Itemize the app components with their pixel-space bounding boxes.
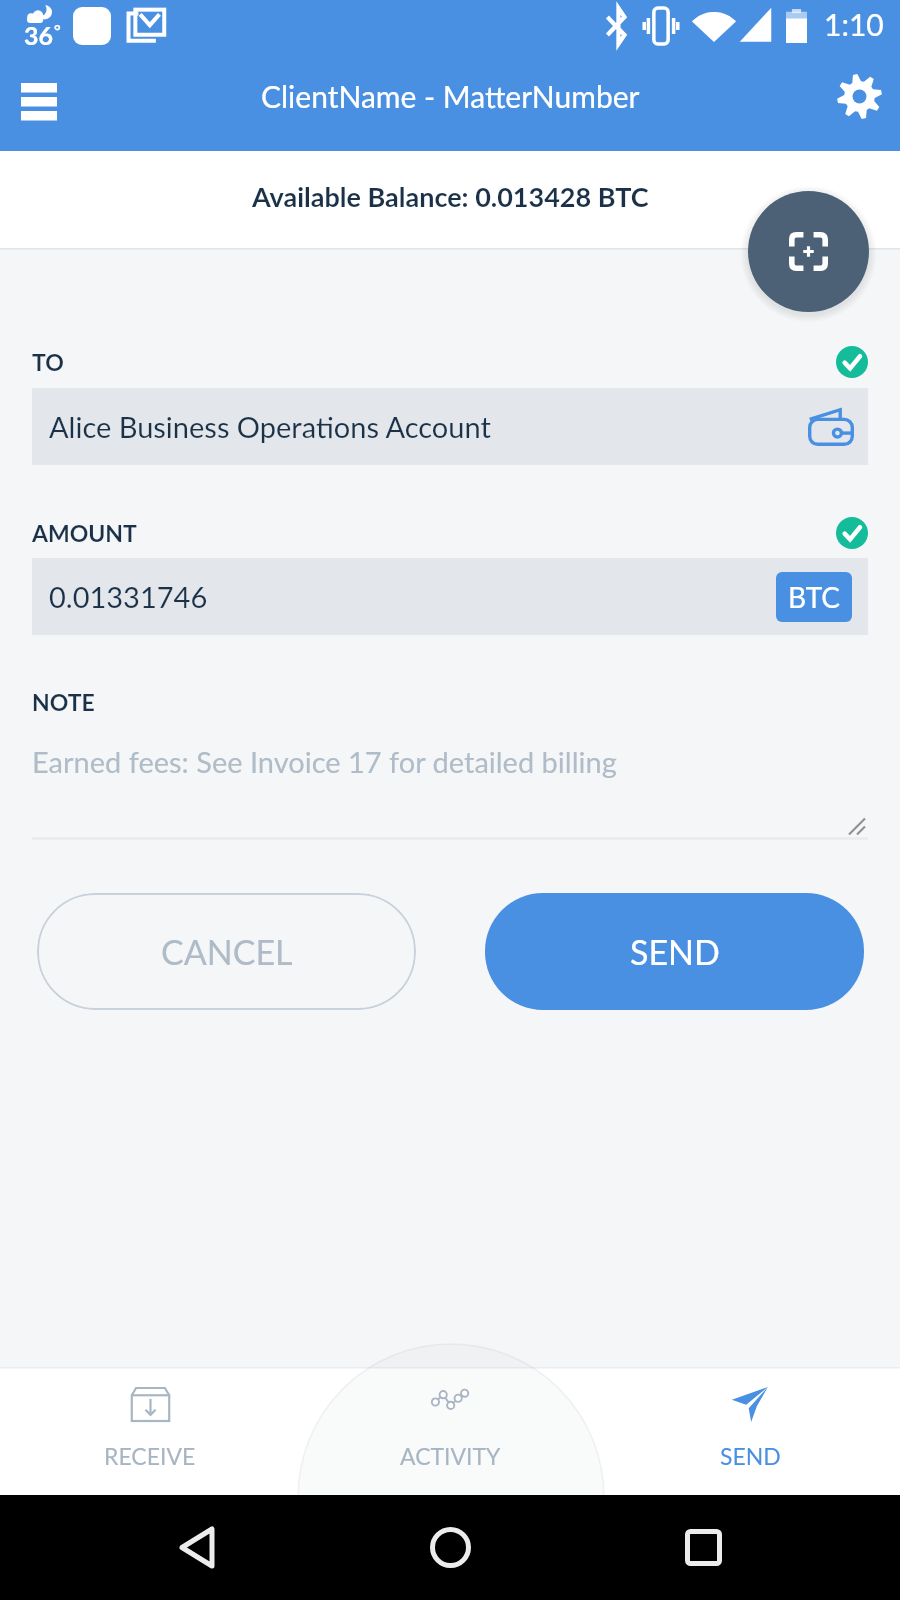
button[interactable]: Settings bbox=[826, 63, 892, 129]
staticText: Alice Business Operations Account bbox=[49, 409, 491, 444]
staticText: CANCEL bbox=[161, 931, 293, 972]
staticText: 0.01331746 bbox=[49, 579, 208, 614]
button[interactable]: BTC bbox=[776, 572, 852, 622]
button[interactable]: Earned fees: See Invoice 17 for detailed… bbox=[32, 735, 868, 839]
staticText: ° bbox=[54, 20, 61, 39]
button[interactable]: Back bbox=[167, 1517, 227, 1577]
button[interactable]: Scan QR code bbox=[748, 191, 869, 312]
staticText: 1:10 bbox=[824, 6, 884, 42]
button[interactable]: ACTIVITY bbox=[300, 1368, 600, 1495]
staticText: ACTIVITY bbox=[400, 1442, 501, 1470]
button[interactable]: Menu bbox=[5, 67, 73, 135]
button[interactable]: RECEIVE bbox=[0, 1368, 300, 1495]
staticText: 36 bbox=[24, 20, 54, 50]
button[interactable]: Alice Business Operations Account bbox=[32, 388, 868, 465]
staticText: ClientName - MatterNumber bbox=[261, 78, 640, 114]
staticText: SEND bbox=[720, 1442, 781, 1470]
staticText: BTC bbox=[788, 580, 841, 614]
button[interactable]: SEND bbox=[600, 1368, 900, 1495]
staticText: NOTE bbox=[32, 688, 95, 716]
staticText: Available Balance: 0.013428 BTC bbox=[252, 180, 649, 212]
button[interactable]: CANCEL bbox=[37, 893, 416, 1010]
staticText: Earned fees: See Invoice 17 for detailed… bbox=[32, 744, 617, 779]
staticText: AMOUNT bbox=[32, 519, 137, 547]
button[interactable]: SEND bbox=[485, 893, 864, 1010]
button[interactable]: Choose wallet bbox=[800, 396, 862, 458]
button[interactable]: 0.01331746 bbox=[32, 558, 868, 635]
button[interactable]: Home bbox=[420, 1517, 480, 1577]
staticText: TO bbox=[32, 348, 64, 376]
staticText: SEND bbox=[630, 931, 720, 972]
staticText: RECEIVE bbox=[104, 1442, 196, 1470]
button[interactable]: Recent apps bbox=[673, 1517, 733, 1577]
